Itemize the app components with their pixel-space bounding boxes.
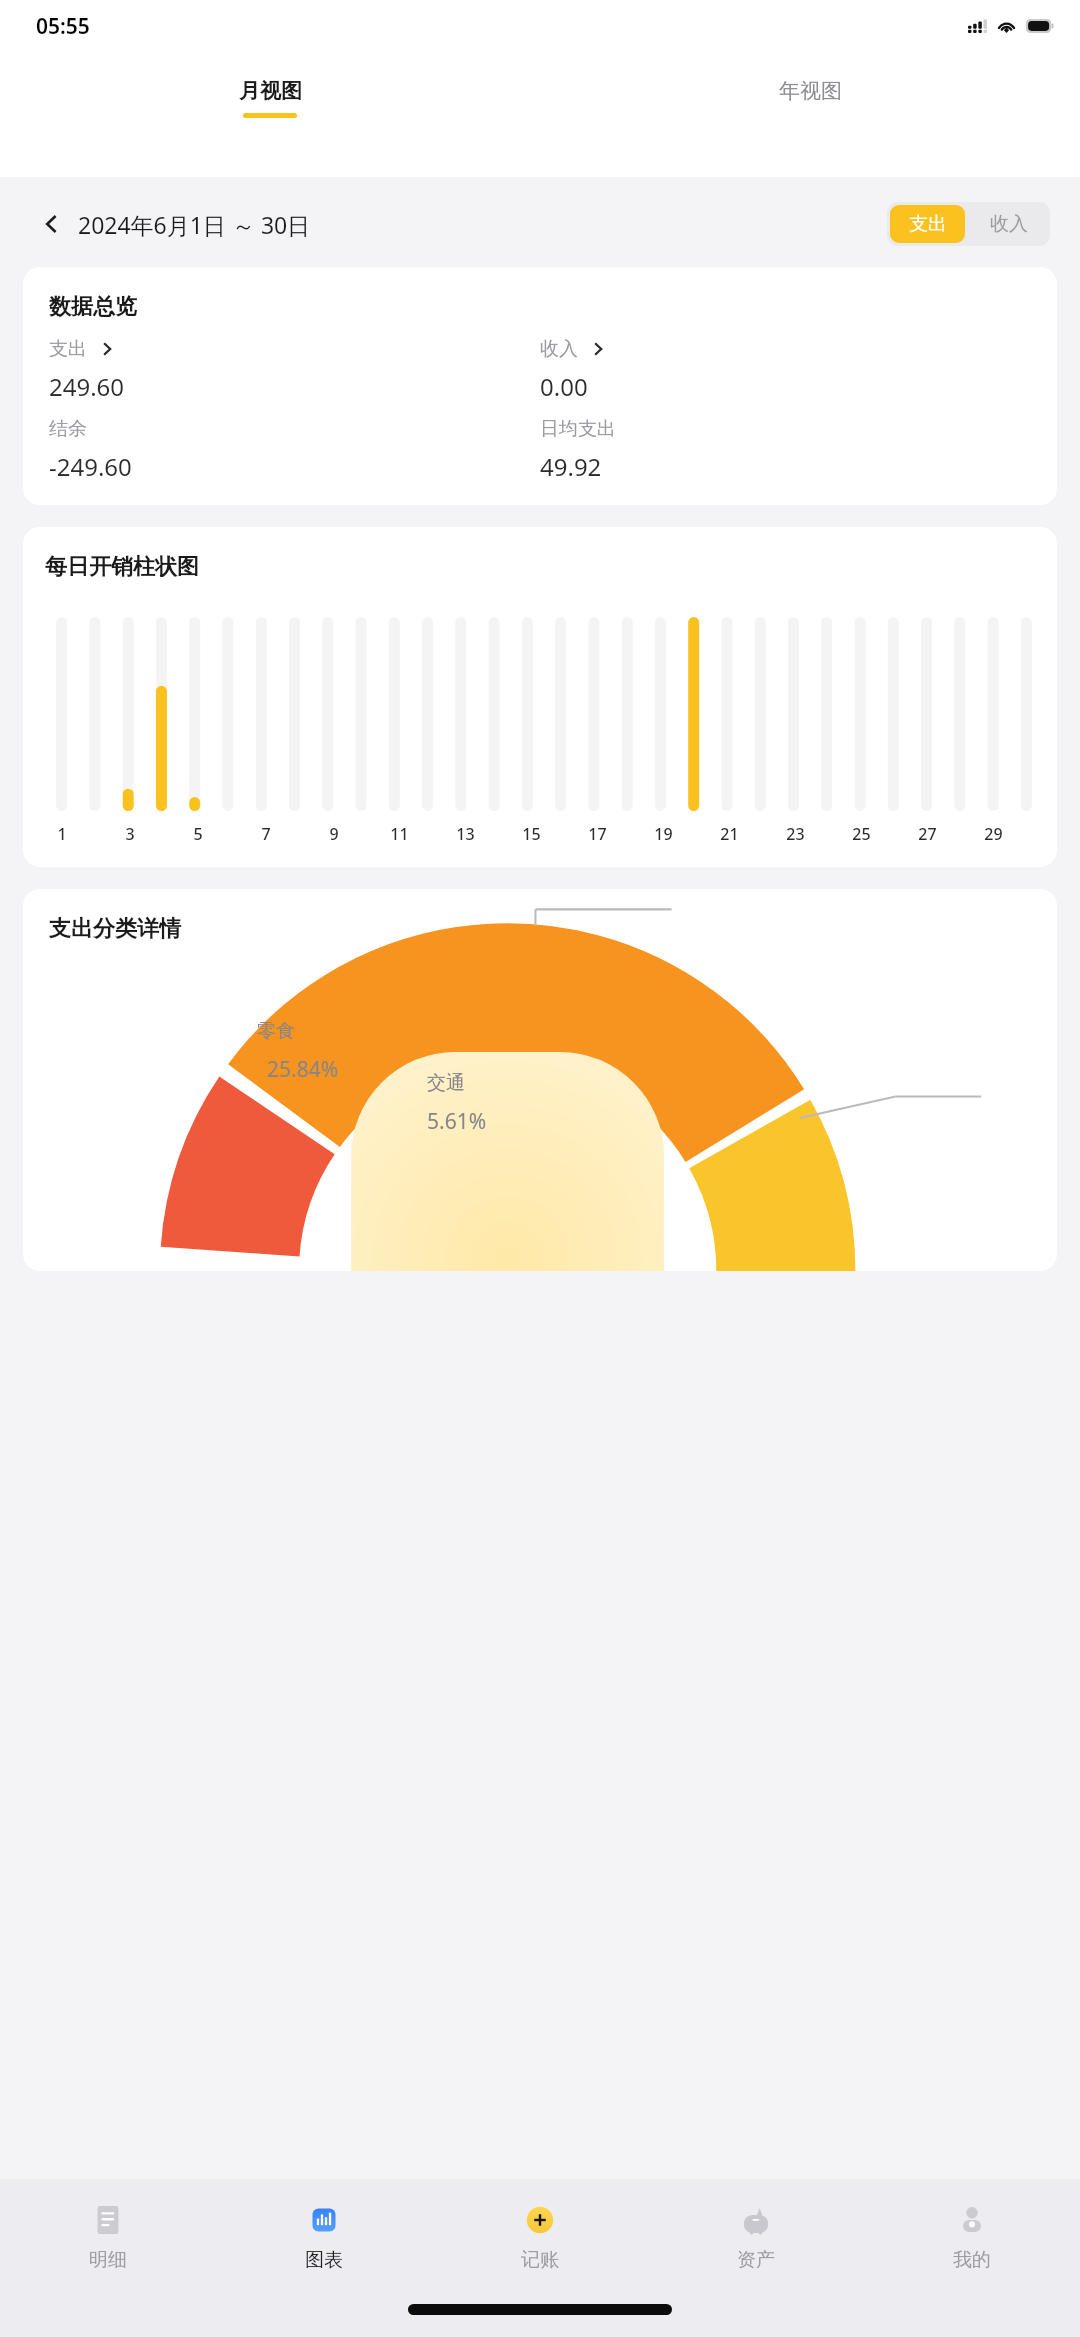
button[interactable]: 收入	[968, 202, 1050, 246]
staticText: 5.61%	[427, 1107, 487, 1136]
staticText: 收入	[990, 212, 1028, 236]
staticText: -249.60	[49, 450, 132, 483]
button[interactable]: 月视图	[0, 52, 540, 118]
staticText: 17	[588, 823, 607, 845]
staticText: 资产	[737, 2248, 775, 2272]
staticText: 2024年6月1日 ～ 30日	[78, 209, 311, 240]
staticText: 结余	[49, 417, 87, 441]
button[interactable]: 我的	[864, 2179, 1080, 2291]
staticText: 19	[654, 823, 673, 845]
button[interactable]: 支出	[890, 205, 965, 243]
button[interactable]: Previous period	[30, 202, 74, 246]
staticText: 9	[329, 823, 339, 845]
staticText: 29	[984, 823, 1003, 845]
staticText: 月视图	[239, 78, 302, 104]
staticText: 收入	[540, 337, 578, 361]
staticText: 日均支出	[540, 417, 616, 441]
button[interactable]: 数据总览	[23, 267, 1057, 505]
button[interactable]: 明细	[0, 2179, 216, 2291]
staticText: 支出	[49, 337, 87, 361]
staticText: 1	[57, 823, 67, 845]
staticText: 零食	[257, 1019, 295, 1043]
button[interactable]: 图表	[216, 2179, 432, 2291]
staticText: 11	[390, 823, 409, 845]
staticText: 25.84%	[267, 1055, 339, 1084]
staticText: 交通	[427, 1071, 465, 1095]
staticText: 年视图	[779, 78, 842, 104]
staticText: 21	[720, 823, 739, 845]
staticText: 每日开销柱状图	[45, 553, 199, 581]
staticText: 记账	[521, 2248, 559, 2272]
button[interactable]: 收入	[540, 337, 1031, 403]
staticText: 支出	[909, 212, 947, 236]
staticText: 我的	[953, 2248, 991, 2272]
staticText: 5	[193, 823, 203, 845]
staticText: 25	[852, 823, 871, 845]
button[interactable]: 支出	[49, 337, 540, 403]
staticText: 0.00	[540, 370, 588, 403]
staticText: 23	[786, 823, 805, 845]
other: Add record	[518, 2198, 562, 2242]
staticText: 支出分类详情	[49, 915, 181, 943]
staticText: 数据总览	[49, 293, 137, 321]
staticText: 明细	[89, 2248, 127, 2272]
staticText: 图表	[305, 2248, 343, 2272]
staticText: 13	[456, 823, 475, 845]
staticText: 249.60	[49, 370, 125, 403]
staticText: 49.92	[540, 450, 602, 483]
staticText: 7	[261, 823, 271, 845]
staticText: 05:55	[36, 12, 90, 41]
button[interactable]: 日均支出	[540, 417, 1031, 483]
button[interactable]: 年视图	[540, 52, 1080, 118]
button[interactable]: 资产	[648, 2179, 864, 2291]
staticText: 3	[125, 823, 135, 845]
staticText: 27	[918, 823, 937, 845]
staticText: 15	[522, 823, 541, 845]
button[interactable]: 结余	[49, 417, 540, 483]
button[interactable]: Add record	[432, 2179, 648, 2291]
